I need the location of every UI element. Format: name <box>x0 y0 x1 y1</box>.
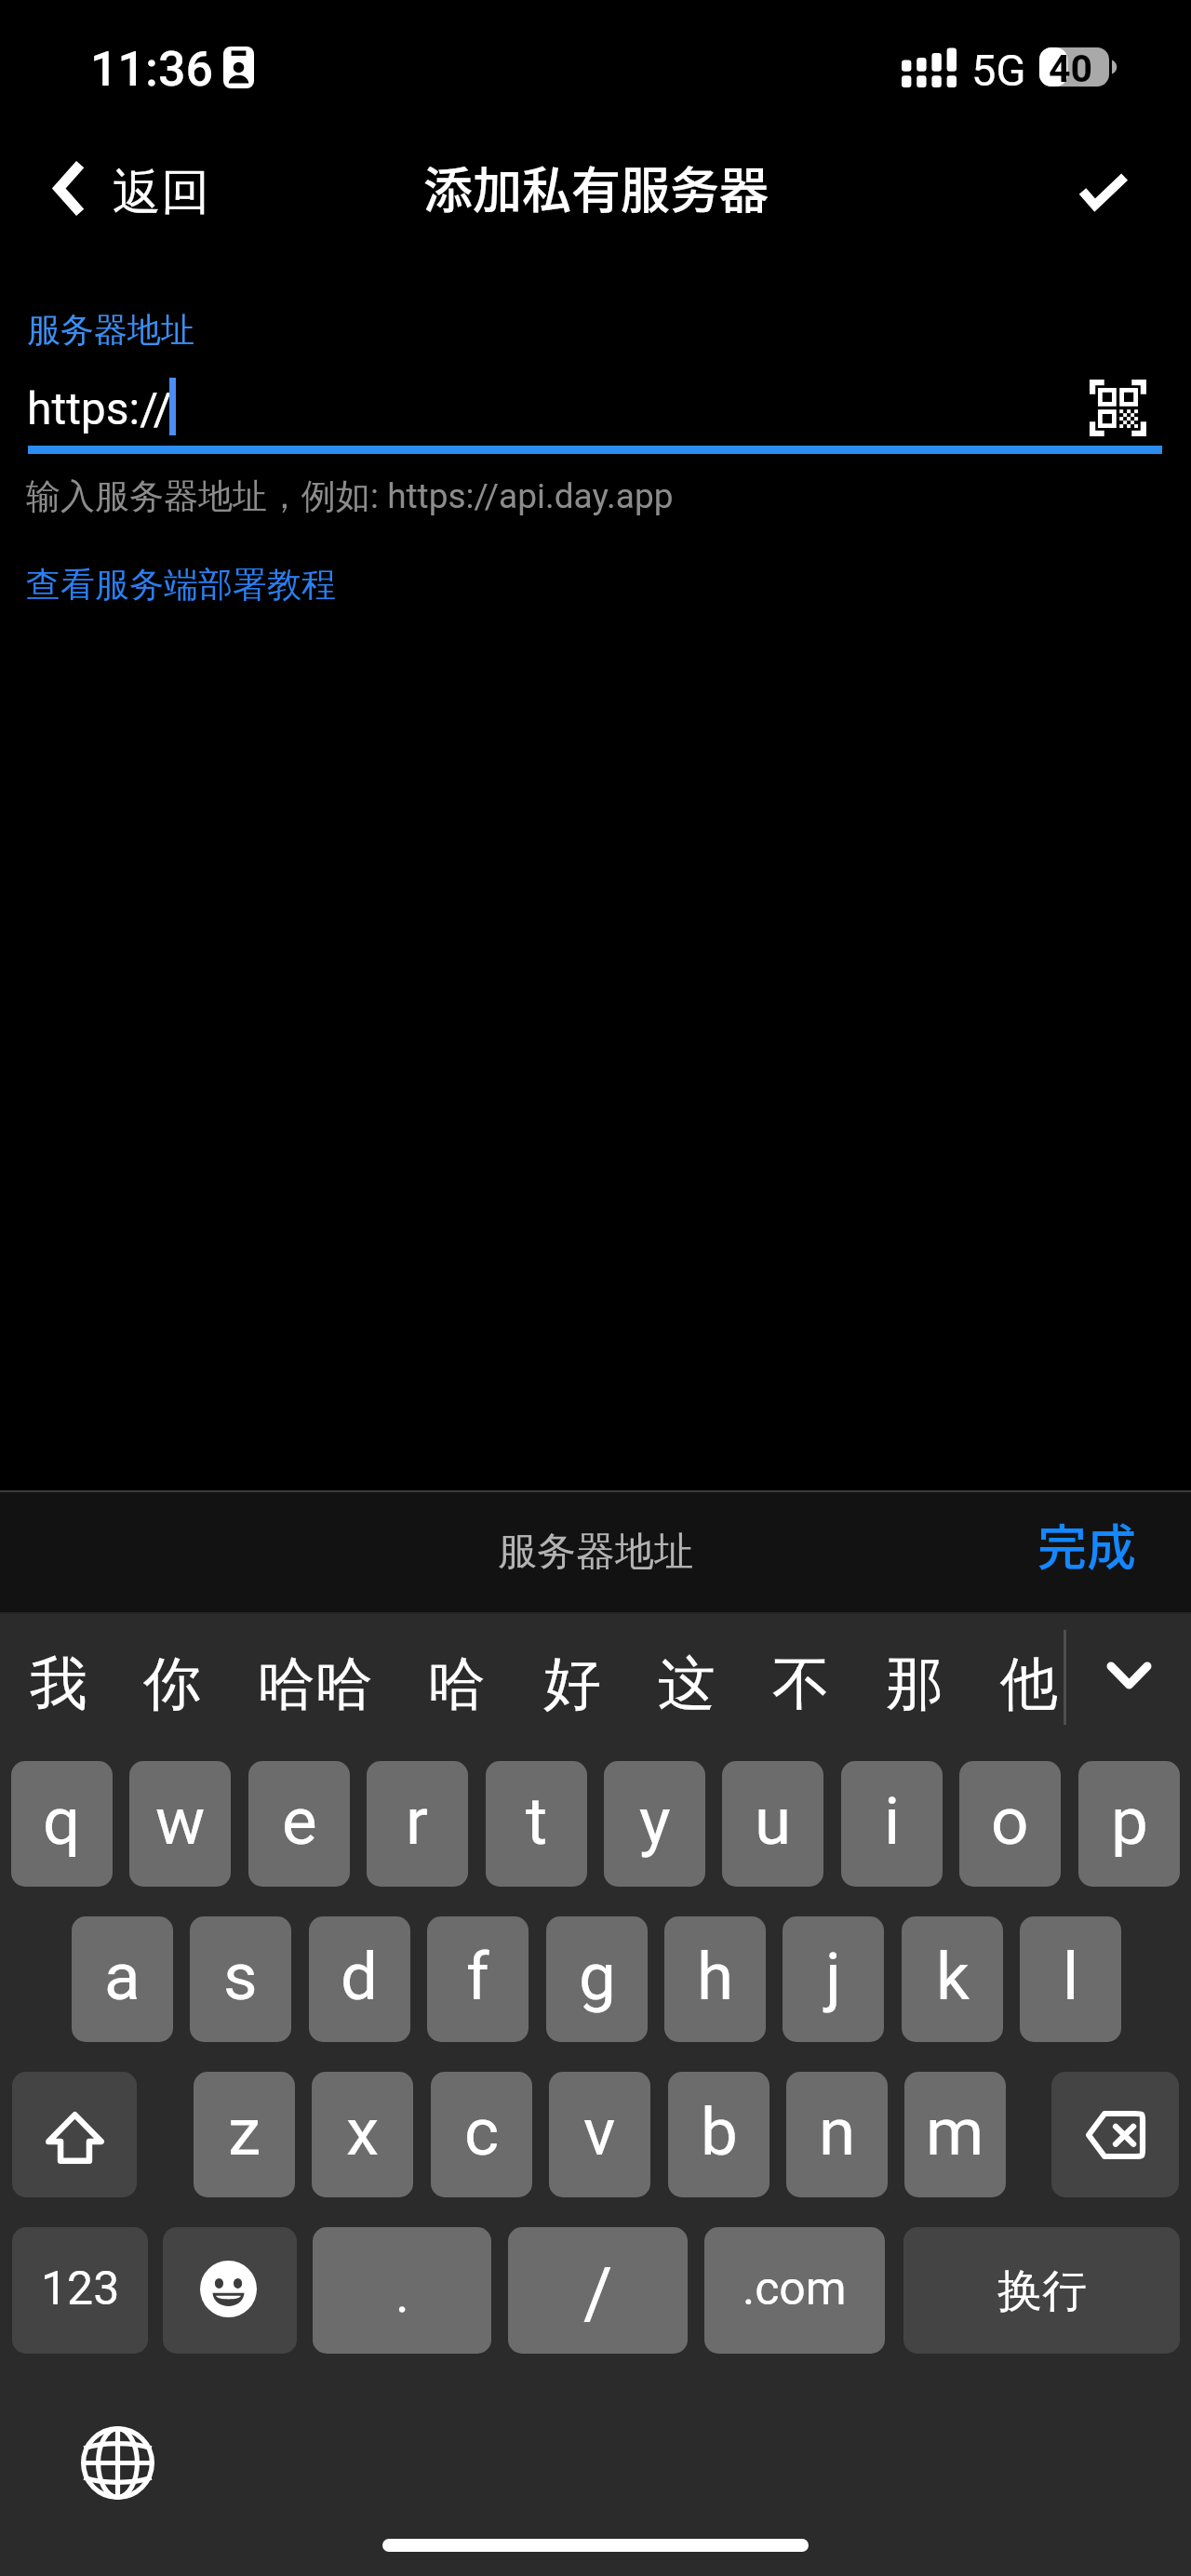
button[interactable]: m <box>904 2072 1006 2197</box>
staticText: z <box>228 2093 261 2170</box>
staticText: 他 <box>1000 1648 1058 1720</box>
staticText: i <box>884 1782 901 1860</box>
staticText: x <box>346 2093 380 2170</box>
button[interactable]: 完成 <box>997 1490 1176 1614</box>
staticText: n <box>819 2093 856 2170</box>
button[interactable]: n <box>786 2072 888 2197</box>
staticText: 好 <box>543 1648 601 1720</box>
button[interactable]: .com <box>704 2227 885 2354</box>
button[interactable]: Hide keyboard <box>1084 1614 1172 1750</box>
staticText: 你 <box>143 1648 201 1720</box>
button[interactable]: r <box>367 1761 468 1887</box>
staticText: 服务器地址 <box>27 309 194 351</box>
staticText: m <box>926 2093 984 2170</box>
staticText: 我 <box>30 1648 87 1720</box>
staticText: j <box>825 1938 841 2015</box>
button[interactable]: l <box>1020 1916 1121 2042</box>
staticText: g <box>579 1938 616 2015</box>
button[interactable]: 123 <box>12 2227 148 2354</box>
staticText: y <box>639 1782 671 1860</box>
button[interactable]: h <box>664 1916 766 2042</box>
button[interactable]: w <box>129 1761 231 1887</box>
staticText: . <box>395 2263 409 2325</box>
staticText: s <box>223 1938 258 2015</box>
staticText: 哈 <box>428 1648 486 1720</box>
button[interactable]: s <box>190 1916 291 2042</box>
button[interactable]: p <box>1078 1761 1180 1887</box>
staticText: 服务器地址 <box>498 1528 693 1577</box>
button[interactable]: z <box>194 2072 295 2197</box>
button[interactable]: Switch keyboard <box>81 2426 154 2500</box>
staticText: 40 <box>1049 47 1093 91</box>
button[interactable]: 哈 <box>428 1614 486 1750</box>
button[interactable]: 不 <box>772 1614 830 1750</box>
button[interactable]: 我 <box>30 1614 87 1750</box>
button[interactable]: y <box>604 1761 705 1887</box>
button[interactable]: a <box>72 1916 173 2042</box>
staticText: 换行 <box>997 2263 1087 2319</box>
staticText: d <box>341 1938 379 2015</box>
button[interactable]: x <box>312 2072 413 2197</box>
staticText: a <box>104 1938 141 2015</box>
button[interactable]: f <box>427 1916 529 2042</box>
staticText: p <box>1111 1782 1148 1860</box>
staticText: f <box>466 1938 489 2015</box>
button[interactable]: 查看服务端部署教程 <box>26 563 336 607</box>
staticText: h <box>697 1938 734 2015</box>
staticText: b <box>701 2093 738 2170</box>
button[interactable]: 哈哈 <box>258 1614 373 1750</box>
staticText: q <box>43 1782 81 1860</box>
button[interactable]: 你 <box>143 1614 201 1750</box>
staticText: u <box>755 1782 792 1860</box>
staticText: 哈哈 <box>258 1648 373 1720</box>
button[interactable]: q <box>11 1761 113 1887</box>
button[interactable]: i <box>841 1761 943 1887</box>
staticText: 输入服务器地址，例如: https://api.day.app <box>26 474 674 518</box>
staticText: t <box>526 1782 548 1860</box>
button[interactable]: Shift <box>12 2072 137 2197</box>
button[interactable]: 那 <box>886 1614 943 1750</box>
staticText: e <box>282 1782 317 1860</box>
button[interactable]: c <box>431 2072 532 2197</box>
staticText: .com <box>743 2262 847 2316</box>
button[interactable]: 换行 <box>903 2227 1180 2354</box>
staticText: k <box>936 1938 970 2015</box>
staticText: https:// <box>27 382 172 434</box>
button[interactable]: v <box>549 2072 650 2197</box>
staticText: 不 <box>772 1648 830 1720</box>
staticText: o <box>991 1782 1029 1860</box>
button[interactable]: e <box>248 1761 350 1887</box>
button[interactable]: k <box>902 1916 1003 2042</box>
button[interactable]: Emoji <box>163 2227 297 2354</box>
staticText: 完成 <box>1037 1509 1136 1581</box>
button[interactable]: o <box>959 1761 1061 1887</box>
button[interactable]: 返回 <box>0 130 247 251</box>
staticText: 这 <box>658 1648 716 1720</box>
staticText: c <box>464 2093 500 2170</box>
staticText: 那 <box>886 1648 943 1720</box>
button[interactable]: 好 <box>543 1614 601 1750</box>
button[interactable]: Delete <box>1051 2072 1179 2197</box>
button[interactable]: b <box>668 2072 769 2197</box>
staticText: 返回 <box>113 162 209 223</box>
button[interactable]: / <box>508 2227 688 2354</box>
button[interactable]: 这 <box>658 1614 716 1750</box>
staticText: 添加私有服务器 <box>423 152 769 223</box>
staticText: / <box>583 2251 613 2334</box>
button[interactable]: Scan QR code <box>1090 380 1146 436</box>
staticText: r <box>406 1782 429 1860</box>
button[interactable]: j <box>783 1916 884 2042</box>
button[interactable]: u <box>722 1761 823 1887</box>
button[interactable]: d <box>309 1916 410 2042</box>
button[interactable]: . <box>313 2227 491 2354</box>
staticText: 123 <box>41 2262 120 2316</box>
staticText: v <box>583 2093 616 2170</box>
staticText: 5G <box>971 45 1026 96</box>
button[interactable]: Save <box>1042 130 1191 251</box>
button[interactable]: 他 <box>1000 1614 1058 1750</box>
staticText: 11:36 <box>90 41 214 98</box>
staticText: w <box>155 1782 206 1860</box>
button[interactable]: t <box>486 1761 587 1887</box>
staticText: l <box>1063 1938 1079 2015</box>
button[interactable]: g <box>546 1916 648 2042</box>
